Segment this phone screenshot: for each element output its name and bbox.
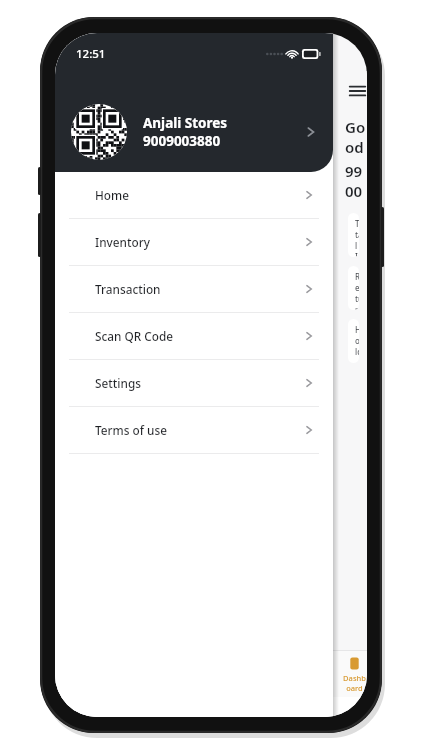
staticText: 12:51	[76, 46, 106, 62]
button[interactable]: Home	[55, 172, 333, 218]
staticText: Settings	[95, 375, 302, 391]
staticText: Inventory	[95, 234, 302, 250]
button[interactable]: Dashboard	[342, 656, 367, 693]
staticText: Good	[345, 117, 367, 157]
button[interactable]: Scan QR Code	[55, 313, 333, 359]
staticText: Scan QR Code	[95, 328, 302, 344]
staticText: Returns	[355, 271, 359, 310]
button[interactable]: Terms of use	[55, 407, 333, 453]
staticText: 9009003880	[143, 132, 221, 150]
button[interactable]: Transaction	[55, 266, 333, 312]
button[interactable]: Inventory	[55, 219, 333, 265]
staticText: 9900	[345, 161, 367, 201]
button[interactable]: Total Items	[348, 213, 359, 257]
staticText: Home	[95, 187, 302, 203]
button[interactable]: Hold	[348, 319, 359, 363]
button[interactable]: Anjali Stores	[55, 92, 333, 172]
staticText: Dashboard	[342, 673, 367, 693]
staticText: Anjali Stores	[143, 114, 228, 132]
button[interactable]: Returns	[348, 266, 359, 310]
button[interactable]: Open navigation menu	[348, 80, 367, 102]
staticText: Hold	[355, 324, 359, 357]
staticText: Total Items	[355, 218, 359, 257]
button[interactable]: Settings	[55, 360, 333, 406]
staticText: Terms of use	[95, 422, 302, 438]
staticText: Transaction	[95, 281, 302, 297]
